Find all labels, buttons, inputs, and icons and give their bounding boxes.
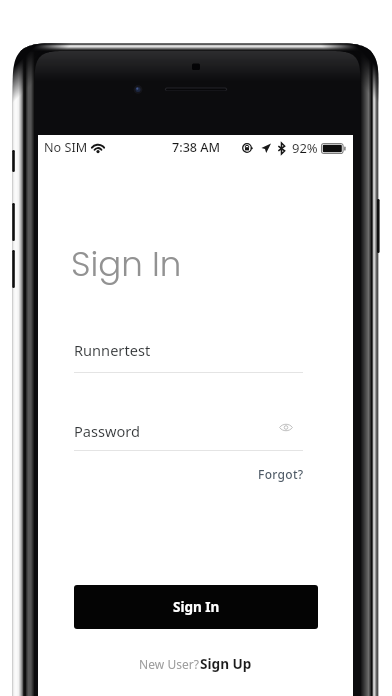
staticText: Password <box>74 421 141 441</box>
staticText: Runnertest <box>74 340 151 360</box>
staticText: Sign In <box>71 240 182 288</box>
staticText: Forgot? <box>258 466 304 482</box>
staticText: 7:38 AM <box>172 139 221 156</box>
staticText: No SIM <box>44 139 88 156</box>
staticText: 92% <box>292 139 318 157</box>
button[interactable]: Forgot? <box>258 466 304 482</box>
button[interactable]: Sign In <box>74 585 318 629</box>
button[interactable]: Sign Up <box>200 654 252 673</box>
staticText: Sign In <box>173 598 220 616</box>
button[interactable]: Show password <box>276 417 296 437</box>
staticText: New User? <box>139 656 200 672</box>
